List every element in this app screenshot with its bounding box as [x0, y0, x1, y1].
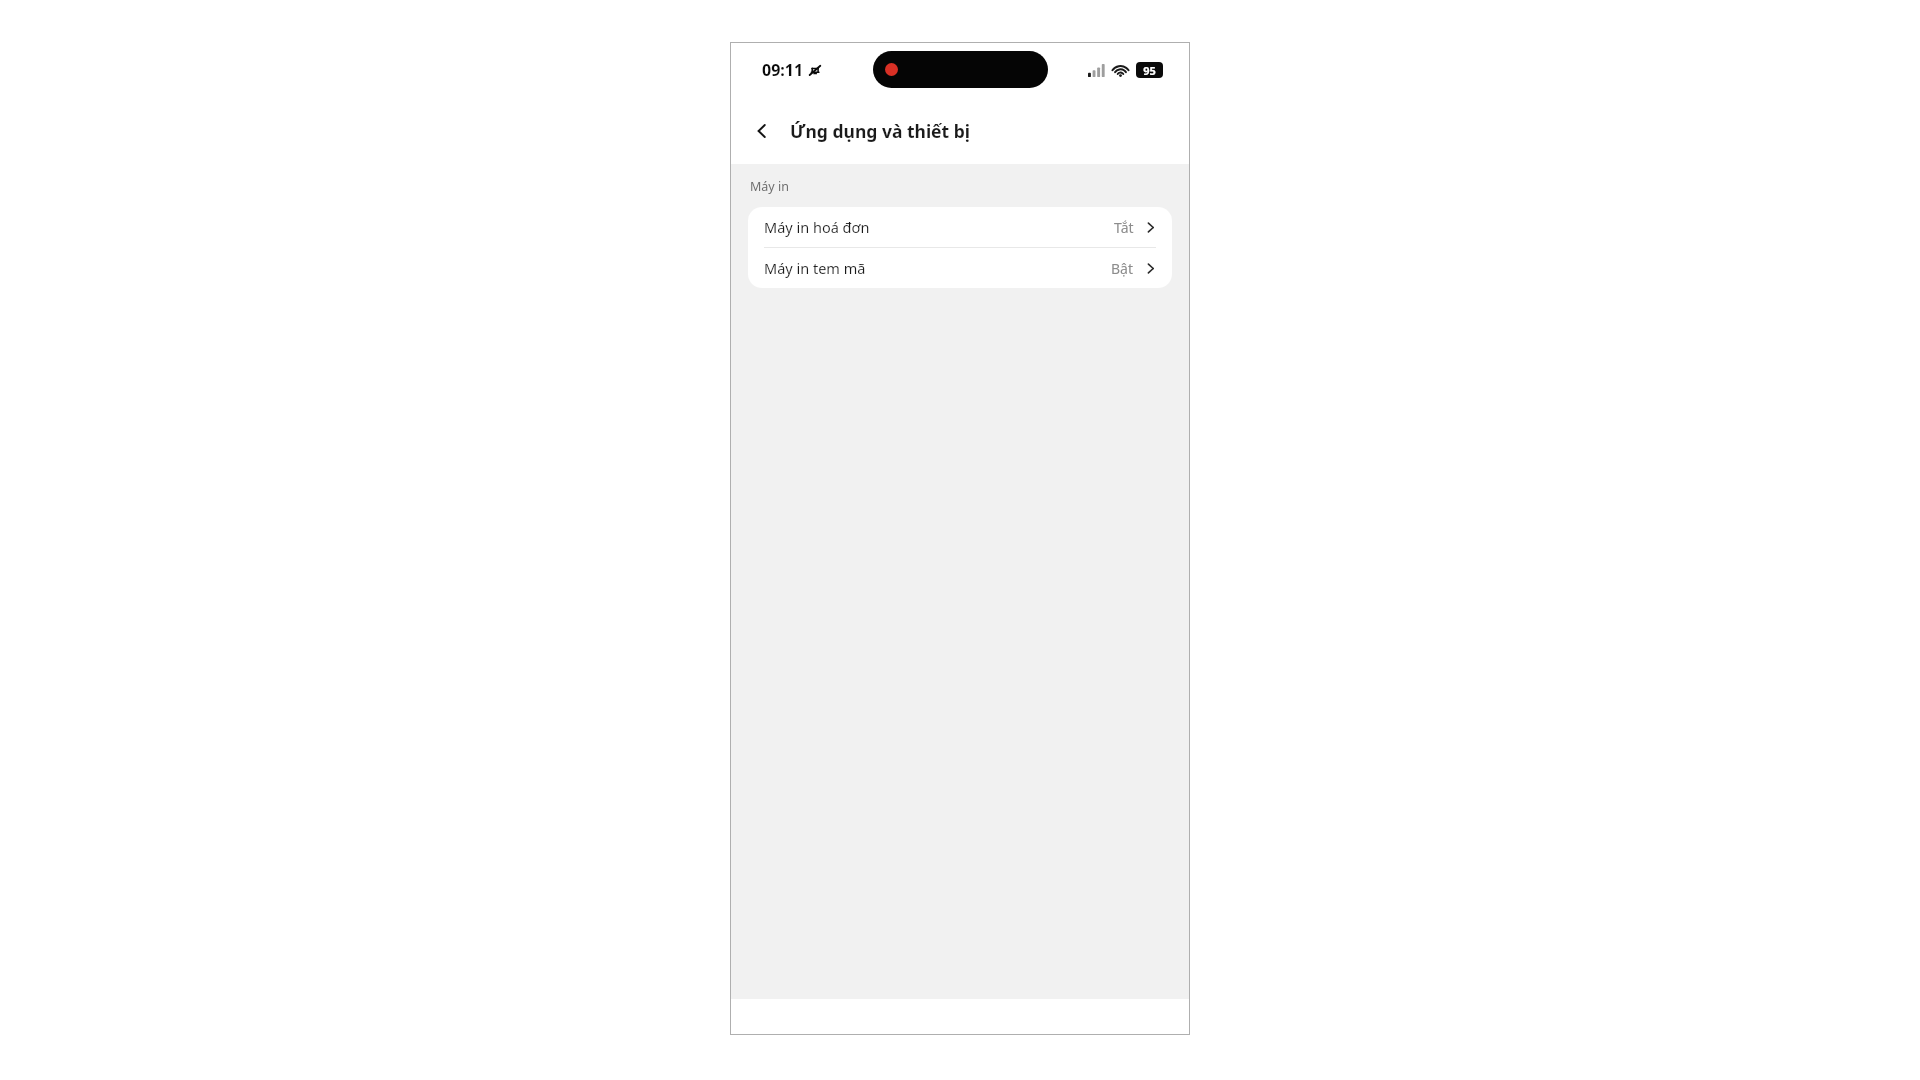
staticText: Máy in	[750, 178, 789, 195]
button[interactable]: Máy in tem mã	[748, 248, 1172, 288]
staticText: Ứng dụng và thiết bị	[790, 119, 971, 143]
staticText: 09:11	[762, 59, 804, 81]
staticText: Tắt	[1114, 218, 1134, 237]
staticText: Bật	[1111, 259, 1134, 278]
staticText: Máy in tem mã	[764, 258, 866, 278]
button[interactable]: Máy in hoá đơn	[748, 207, 1172, 247]
staticText: 95	[1143, 63, 1156, 78]
staticText: Máy in hoá đơn	[764, 217, 870, 237]
button[interactable]: Quay lại	[740, 109, 784, 153]
